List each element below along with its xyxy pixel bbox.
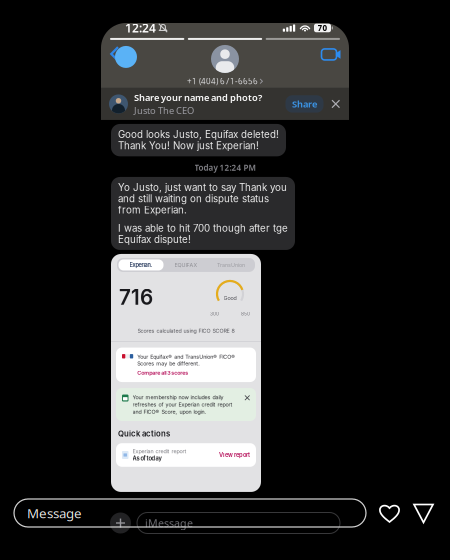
button[interactable]: Add attachment xyxy=(110,512,131,533)
staticText: Compare all 3 scores xyxy=(137,370,188,376)
staticText: EQUIFAX xyxy=(174,262,197,268)
staticText: Today 12:24 PM xyxy=(194,162,255,173)
staticText: Share xyxy=(292,98,317,110)
staticText: As of today xyxy=(132,455,161,462)
button[interactable]: Dismiss xyxy=(244,394,250,400)
staticText: Thank You! Now just Experian! xyxy=(118,140,259,151)
staticText: 300 xyxy=(210,311,219,317)
button[interactable]: Share xyxy=(285,95,323,113)
button[interactable]: Dismiss xyxy=(329,94,342,114)
staticText: Quick actions xyxy=(118,429,170,438)
button[interactable]: Back xyxy=(110,41,150,87)
button[interactable]: Share xyxy=(413,503,434,523)
staticText: and still waiting on dispute status xyxy=(118,193,269,204)
staticText: Message xyxy=(27,504,82,522)
staticText: Experian credit report xyxy=(132,448,186,454)
staticText: Your membership now includes daily xyxy=(132,394,223,400)
staticText: Scores calculated using FICO SCORE 8 xyxy=(137,328,234,334)
button[interactable]: FaceTime xyxy=(305,40,339,88)
staticText: 12:24 xyxy=(125,20,156,36)
staticText: Good looks Justo, Equifax deleted! xyxy=(118,129,279,140)
staticText: TransUnion xyxy=(217,262,245,268)
button[interactable]: Like xyxy=(379,503,400,523)
staticText: Yo Justo, just want to say Thank you xyxy=(118,182,287,193)
staticText: 850 xyxy=(241,311,250,317)
staticText: I was able to hit 700 though after tge xyxy=(118,222,288,234)
staticText: from Experian. xyxy=(118,204,187,216)
staticText: Experian. xyxy=(129,262,152,268)
staticText: Justo The CEO xyxy=(134,104,194,117)
button[interactable]: Experian credit report xyxy=(111,443,261,467)
staticText: Equifax dispute! xyxy=(118,234,191,245)
button[interactable]: Message xyxy=(14,499,366,527)
staticText: Scores may be different. xyxy=(137,360,200,367)
staticText: 70 xyxy=(317,23,327,33)
staticText: Your Equifax® and TransUnion® FICO® xyxy=(137,354,235,360)
staticText: View report xyxy=(219,452,250,458)
staticText: Good xyxy=(223,295,236,301)
staticText: 716 xyxy=(119,285,153,310)
staticText: Share your name and photo? xyxy=(134,91,262,104)
staticText: +1 (404) 671-6656 xyxy=(187,76,258,86)
staticText: refreshes of your Experian credit report xyxy=(132,401,232,408)
button[interactable]: +1 (404) 671-6656 xyxy=(187,40,263,86)
staticText: iMessage xyxy=(145,516,193,530)
staticText: and FICO® Score, upon login. xyxy=(132,409,206,415)
